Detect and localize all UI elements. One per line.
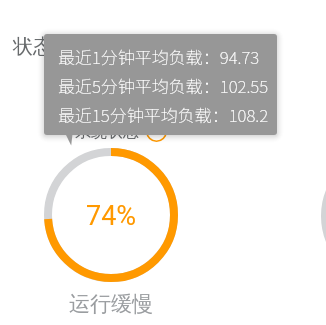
staticText: 最近1分钟平均负载：94.73 (58, 44, 260, 69)
staticText: 系统状态 (75, 122, 139, 142)
staticText: 最近5分钟平均负载：102.55 (58, 73, 269, 98)
button[interactable]: Help (146, 121, 167, 142)
staticText: 74% (86, 200, 137, 232)
staticText: 状态 (13, 34, 53, 59)
staticText: 运行缓慢 (69, 291, 153, 317)
staticText: 最近15分钟平均负载：108.2 (58, 102, 269, 127)
